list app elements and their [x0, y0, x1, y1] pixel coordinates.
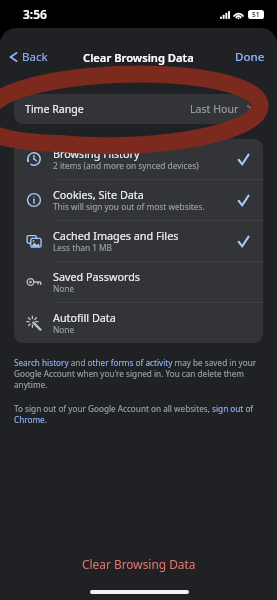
staticText: Last Hour	[190, 102, 239, 116]
staticText: Saved Passwords	[53, 269, 141, 284]
staticText: Search history and other forms of activi…	[14, 357, 263, 390]
button[interactable]: Browsing History	[14, 139, 263, 179]
button[interactable]: Saved Passwords	[14, 262, 263, 302]
staticText: Less than 1 MB	[53, 242, 113, 253]
button[interactable]: Autofill Data	[14, 303, 263, 343]
button[interactable]: Done	[223, 45, 277, 69]
staticText: To sign out of your Google Account on al…	[14, 403, 263, 425]
staticText: Clear Browsing Data	[82, 556, 196, 572]
staticText: This will sign you out of most websites.	[53, 201, 205, 212]
button[interactable]: Time Range	[14, 94, 263, 124]
staticText: None	[53, 283, 75, 294]
button[interactable]: Cached Images and Files	[14, 221, 263, 261]
staticText: Browsing History	[53, 146, 140, 161]
staticText: Autofill Data	[53, 310, 116, 325]
staticText: 3:56	[23, 6, 47, 22]
button[interactable]: Clear Browsing Data	[58, 551, 220, 577]
staticText: Back	[22, 49, 48, 65]
staticText: None	[53, 324, 75, 335]
button[interactable]: Cookies, Site Data	[14, 180, 263, 220]
staticText: Clear Browsing Data	[83, 50, 194, 65]
staticText: Time Range	[25, 102, 84, 116]
staticText: 2 items (and more on synced devices)	[53, 160, 199, 171]
staticText: Cookies, Site Data	[53, 187, 144, 202]
staticText: Cached Images and Files	[53, 228, 179, 243]
staticText: Done	[235, 49, 265, 65]
button[interactable]: Back	[0, 44, 58, 70]
staticText: 51	[252, 10, 260, 19]
